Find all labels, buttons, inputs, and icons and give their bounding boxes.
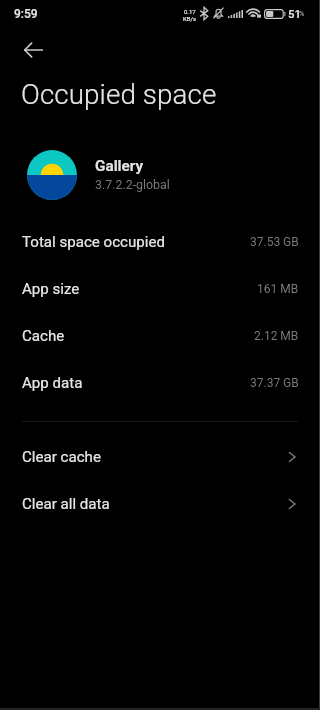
staticText: 51	[288, 7, 302, 20]
button[interactable]: Back	[11, 28, 55, 72]
staticText: Clear all data	[22, 495, 110, 513]
button[interactable]: Total space occupied	[0, 218, 320, 265]
staticText: 2.12 MB	[254, 329, 299, 343]
button[interactable]: App data	[0, 359, 320, 406]
staticText: App data	[22, 374, 83, 392]
button[interactable]: Clear cache	[0, 433, 320, 480]
staticText: 0.17	[184, 8, 196, 15]
staticText: %	[299, 10, 305, 18]
staticText: KB/s	[183, 15, 197, 22]
staticText: App size	[22, 280, 80, 298]
button[interactable]: Clear all data	[0, 480, 320, 527]
staticText: Clear cache	[22, 448, 101, 466]
staticText: Total space occupied	[22, 233, 165, 251]
staticText: Gallery	[95, 157, 144, 175]
button[interactable]: App size	[0, 265, 320, 312]
staticText: 37.53 GB	[250, 235, 299, 249]
staticText: 9:59	[14, 7, 38, 21]
staticText: Occupied space	[21, 78, 217, 111]
button[interactable]: Cache	[0, 312, 320, 359]
staticText: 161 MB	[257, 282, 299, 296]
staticText: Cache	[22, 327, 65, 345]
staticText: 3.7.2.2-global	[95, 177, 170, 192]
staticText: 37.37 GB	[250, 376, 299, 390]
